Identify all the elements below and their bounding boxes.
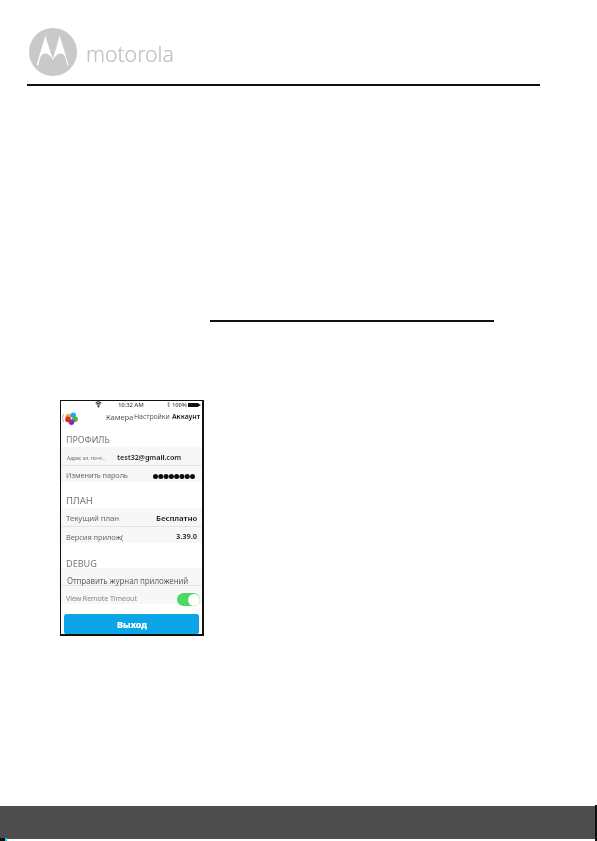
button[interactable]: Выход: [64, 614, 199, 634]
staticText: Адрес эл. почт…: [67, 454, 106, 461]
staticText: motorola: [86, 39, 174, 68]
staticText: Настройки: [134, 412, 170, 422]
staticText: Версия прилож(: [66, 532, 124, 542]
button[interactable]: Настройки: [134, 412, 170, 422]
button[interactable]: [61, 508, 202, 543]
staticText: Отправить журнал приложений: [67, 575, 189, 586]
button[interactable]: View Remote Timeout toggle: [177, 593, 200, 606]
button[interactable]: Аккаунт: [172, 412, 200, 421]
staticText: test32@gmail.com: [117, 452, 182, 462]
staticText: Аккаунт: [172, 412, 200, 421]
staticText: (: [62, 412, 65, 423]
staticText: Текущий план: [66, 513, 120, 524]
staticText: View Remote Timeout: [66, 593, 137, 603]
staticText: Изменить пароль: [66, 470, 128, 480]
staticText: ПРОФИЛЬ: [66, 434, 110, 446]
staticText: Выход: [117, 618, 147, 630]
button[interactable]: [61, 568, 202, 604]
staticText: 10:32 AM: [118, 401, 144, 409]
button[interactable]: Камера: [106, 412, 134, 422]
staticText: DEBUG: [66, 557, 97, 569]
staticText: Камера: [106, 412, 134, 422]
staticText: 100%: [172, 401, 187, 409]
staticText: Бесплатно: [156, 513, 198, 524]
button[interactable]: [61, 447, 202, 482]
staticText: ПЛАН: [66, 494, 93, 507]
staticText: 3.39.0: [176, 531, 198, 541]
